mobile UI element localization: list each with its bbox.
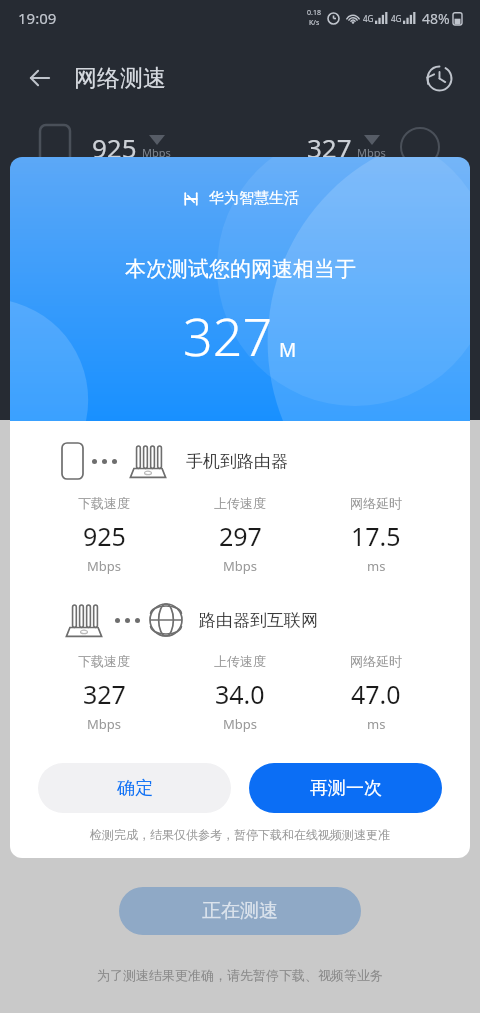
staticText: 327 (307, 130, 352, 165)
staticText: 0.18 (307, 8, 321, 18)
staticText: 手机到路由器 (186, 451, 288, 472)
staticText: ms (367, 715, 386, 733)
staticText: 上传速度 (214, 653, 266, 669)
staticText: 4G (363, 13, 374, 24)
staticText: Mbps (357, 145, 386, 160)
staticText: 华为智慧生活 (209, 189, 299, 208)
staticText: 网络测速 (74, 64, 166, 93)
staticText: Mbps (87, 557, 122, 575)
staticText: Mbps (223, 557, 258, 575)
staticText: M (279, 337, 297, 363)
button[interactable]: History (418, 57, 460, 99)
staticText: 上传速度 (214, 495, 266, 511)
staticText: Mbps (87, 715, 122, 733)
staticText: 19:09 (18, 8, 57, 28)
staticText: 确定 (117, 777, 153, 800)
staticText: 925 (92, 130, 137, 165)
staticText: 下载速度 (78, 653, 130, 669)
staticText: K/s (309, 18, 320, 28)
staticText: 47.0 (351, 677, 401, 711)
staticText: 17.5 (351, 519, 401, 553)
staticText: 网络延时 (350, 653, 402, 669)
staticText: 48% (422, 9, 450, 28)
button[interactable]: Back (20, 58, 60, 98)
staticText: 327 (83, 677, 126, 711)
staticText: ms (367, 557, 386, 575)
staticText: 为了测速结果更准确，请先暂停下载、视频等业务 (97, 967, 383, 983)
staticText: 34.0 (215, 677, 265, 711)
staticText: 本次测试您的网速相当于 (125, 256, 356, 282)
staticText: 检测完成，结果仅供参考，暂停下载和在线视频测速更准 (10, 827, 470, 842)
staticText: Mbps (223, 715, 258, 733)
staticText: 297 (219, 519, 262, 553)
staticText: 4G (391, 13, 402, 24)
staticText: 327 (183, 300, 273, 371)
staticText: 正在测速 (202, 899, 278, 923)
staticText: 再测一次 (310, 777, 382, 800)
staticText: 路由器到互联网 (199, 610, 318, 631)
button[interactable]: 再测一次 (249, 763, 442, 813)
button[interactable]: 确定 (38, 763, 231, 813)
button[interactable]: 正在测速 (119, 887, 361, 935)
staticText: Mbps (142, 145, 171, 160)
staticText: 925 (83, 519, 126, 553)
staticText: 下载速度 (78, 495, 130, 511)
staticText: 网络延时 (350, 495, 402, 511)
